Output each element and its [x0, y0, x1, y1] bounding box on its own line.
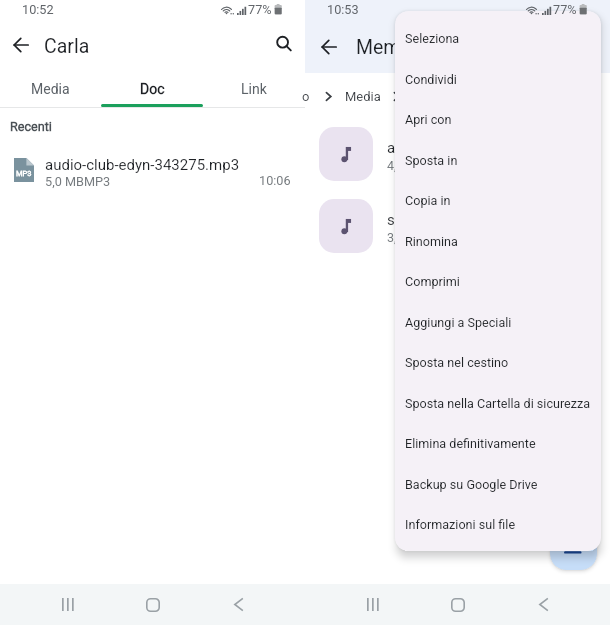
button[interactable]: s — [305, 199, 610, 253]
button[interactable]: Create — [550, 523, 597, 570]
button[interactable]: Sposta nel cestino — [395, 342, 601, 382]
staticText: Condividi — [405, 72, 457, 87]
button[interactable]: Backup su Google Drive — [395, 464, 601, 504]
staticText: 5,0 MBMP3 — [45, 174, 111, 189]
staticText: Apri con — [405, 112, 452, 127]
staticText: 77% — [553, 2, 577, 17]
button[interactable]: Media — [0, 68, 101, 107]
button[interactable]: Informazioni sul file — [395, 504, 601, 544]
staticText: Informazioni sul file — [405, 517, 516, 532]
button[interactable]: Recent apps — [353, 591, 393, 618]
button[interactable]: Comprimi — [395, 261, 601, 301]
staticText: s — [387, 211, 395, 229]
staticText: a — [387, 139, 396, 157]
staticText: Sposta in — [405, 153, 458, 168]
button[interactable]: Sposta nella Cartella di sicurezza — [395, 383, 601, 423]
button[interactable]: Back — [312, 30, 346, 64]
staticText: MP3 — [16, 169, 32, 178]
button[interactable]: Rinomina — [395, 221, 601, 261]
staticText: Copia in — [405, 193, 451, 208]
staticText: Aggiungi a Speciali — [405, 315, 512, 330]
button[interactable]: Back — [523, 591, 563, 618]
staticText: Media — [31, 81, 70, 97]
button[interactable]: Seleziona — [395, 18, 601, 58]
button[interactable]: Apri con — [395, 99, 601, 139]
button[interactable]: MP3 — [0, 147, 305, 193]
button[interactable]: Back — [218, 591, 258, 618]
button[interactable]: Doc — [101, 68, 203, 107]
staticText: 77% — [248, 2, 272, 17]
button[interactable]: Recent apps — [48, 591, 88, 618]
staticText: Elimina definitivamente — [405, 436, 536, 451]
button[interactable]: o — [305, 73, 610, 120]
staticText: Media — [345, 89, 381, 104]
button[interactable]: Condividi — [395, 59, 601, 99]
staticText: Seleziona — [405, 31, 460, 46]
button[interactable]: Elimina definitivamente — [395, 423, 601, 463]
staticText: Recenti — [10, 119, 52, 134]
staticText: o — [302, 89, 310, 104]
button[interactable]: Back — [4, 28, 37, 61]
button[interactable]: Home — [438, 591, 478, 618]
staticText: Rinomina — [405, 234, 458, 249]
staticText: Sposta nella Cartella di sicurezza — [405, 396, 591, 411]
staticText: 10:06 — [259, 173, 291, 188]
staticText: 4, — [387, 158, 397, 173]
button[interactable]: Sposta in — [395, 140, 601, 180]
staticText: Backup su Google Drive — [405, 477, 538, 492]
button[interactable]: Search — [269, 29, 299, 59]
button[interactable]: Home — [133, 591, 173, 618]
staticText: audio-club-edyn-343275.mp3 — [45, 156, 240, 174]
staticText: Memoria — [356, 36, 434, 59]
staticText: Doc — [140, 81, 165, 97]
staticText: Sposta nel cestino — [405, 355, 509, 370]
button[interactable]: Aggiungi a Speciali — [395, 302, 601, 342]
staticText: Link — [241, 81, 267, 97]
button[interactable]: Copia in — [395, 180, 601, 220]
button[interactable]: a — [305, 127, 610, 181]
staticText: Carla — [44, 35, 90, 58]
staticText: Comprimi — [405, 274, 460, 289]
staticText: 3, — [387, 230, 397, 245]
staticText: 10:52 — [22, 2, 54, 17]
button[interactable]: Link — [203, 68, 305, 107]
staticText: 10:53 — [327, 2, 359, 17]
